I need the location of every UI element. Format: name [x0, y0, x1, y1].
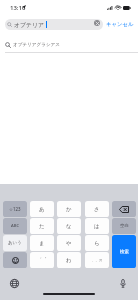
staticText: 検索: [120, 249, 129, 255]
staticText: な: [66, 223, 72, 230]
button[interactable]: ま: [30, 235, 54, 251]
staticText: ら: [94, 240, 100, 247]
button[interactable]: Switch keyboard: [8, 277, 20, 289]
staticText: ABC: [11, 223, 20, 229]
button[interactable]: Clear text: [94, 20, 100, 26]
staticText: オプテリア: [14, 21, 45, 28]
button[interactable]: 、。?!: [85, 252, 109, 268]
button[interactable]: オプテリアグラシアス: [0, 37, 138, 52]
staticText: ☆123: [9, 206, 21, 212]
button[interactable]: あいう: [3, 235, 27, 251]
staticText: あ: [39, 206, 45, 213]
staticText: か: [66, 206, 72, 213]
button[interactable]: ABC: [3, 218, 27, 234]
button[interactable]: [112, 201, 136, 217]
button[interactable]: ☆123: [3, 201, 27, 217]
staticText: や: [66, 240, 72, 247]
button[interactable]: は: [85, 218, 109, 234]
button[interactable]: オプテリア: [5, 19, 103, 30]
button[interactable]: か: [57, 201, 81, 217]
staticText: オプテリアグラシアス: [13, 42, 61, 48]
staticText: 、。?!: [92, 258, 102, 263]
button[interactable]: 空白: [112, 218, 136, 234]
button[interactable]: あ: [30, 201, 54, 217]
staticText: 13:16: [10, 4, 26, 12]
button[interactable]: ゛゜: [30, 252, 54, 268]
button[interactable]: な: [57, 218, 81, 234]
staticText: 空白: [120, 223, 129, 229]
button[interactable]: さ: [85, 201, 109, 217]
staticText: わ: [66, 257, 72, 264]
staticText: ま: [39, 240, 45, 247]
staticText: ゛゜: [37, 257, 47, 263]
staticText: は: [94, 223, 100, 230]
staticText: た: [39, 223, 45, 230]
button[interactable]: ら: [85, 235, 109, 251]
button[interactable]: Dictation: [117, 277, 129, 289]
button[interactable]: た: [30, 218, 54, 234]
staticText: キャンセル: [106, 21, 134, 28]
button[interactable]: わ: [57, 252, 81, 268]
button[interactable]: 検索: [112, 235, 136, 268]
staticText: さ: [94, 206, 100, 213]
button[interactable]: [3, 252, 27, 268]
button[interactable]: や: [57, 235, 81, 251]
button[interactable]: キャンセル: [104, 18, 136, 31]
staticText: あいう: [8, 240, 22, 246]
